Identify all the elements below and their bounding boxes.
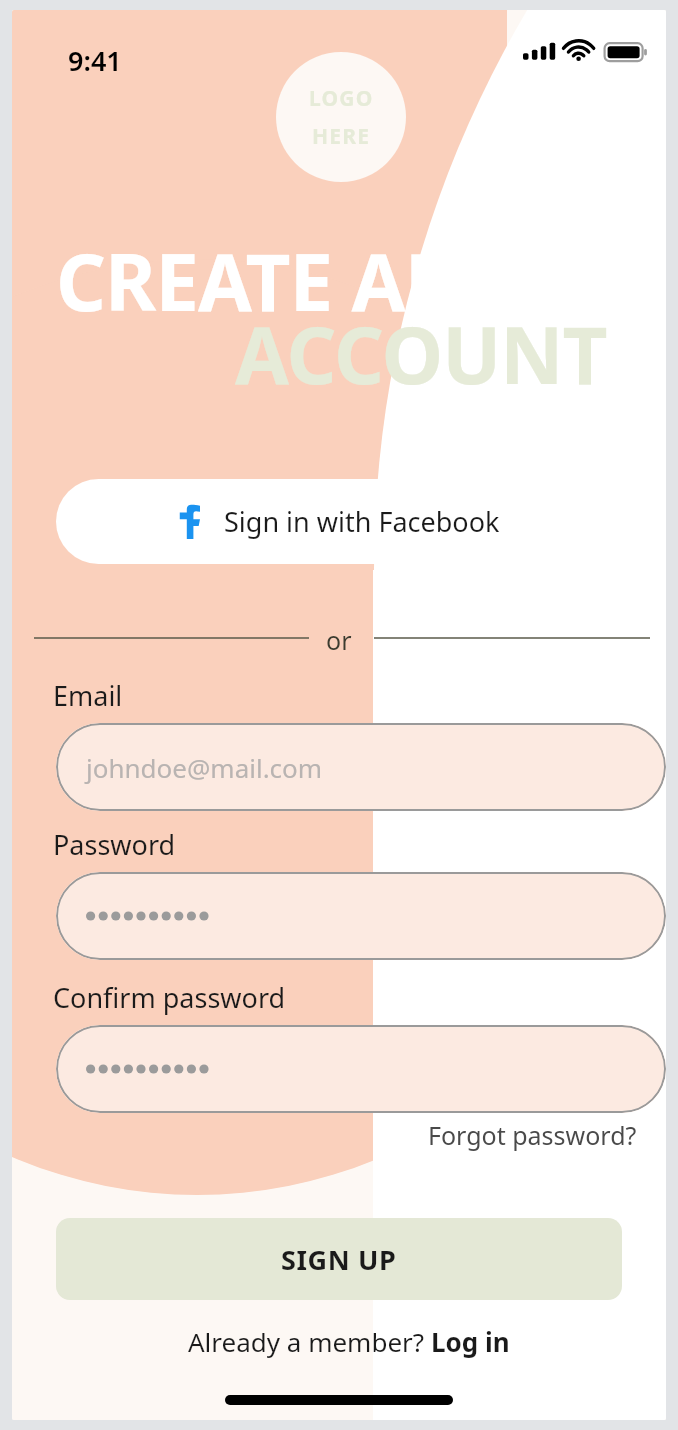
- button[interactable]: LOGO: [276, 52, 406, 182]
- staticText: SIGN UP: [281, 1241, 397, 1278]
- staticText: CREATE AN: [56, 228, 467, 334]
- staticText: Log in: [431, 1324, 510, 1359]
- staticText: Email: [53, 677, 123, 714]
- button[interactable]: SIGN UP: [56, 1218, 622, 1300]
- staticText: LOGO: [309, 84, 374, 113]
- button[interactable]: johndoe@mail.com: [56, 723, 666, 811]
- button[interactable]: Already a member?: [182, 1320, 516, 1363]
- staticText: HERE: [312, 122, 371, 151]
- button[interactable]: Sign in with Facebook: [56, 479, 622, 564]
- staticText: ACCOUNT: [235, 301, 607, 407]
- staticText: Password: [53, 826, 176, 863]
- staticText: or: [326, 623, 352, 657]
- staticText: Confirm password: [53, 979, 286, 1016]
- staticText: Already a member?: [188, 1324, 431, 1359]
- button[interactable]: [56, 1025, 666, 1113]
- staticText: Sign in with Facebook: [224, 503, 500, 540]
- staticText: johndoe@mail.com: [86, 750, 323, 785]
- button[interactable]: Forgot password?: [422, 1114, 643, 1156]
- button[interactable]: [56, 872, 666, 960]
- staticText: Forgot password?: [428, 1118, 637, 1152]
- staticText: 9:41: [68, 42, 122, 79]
